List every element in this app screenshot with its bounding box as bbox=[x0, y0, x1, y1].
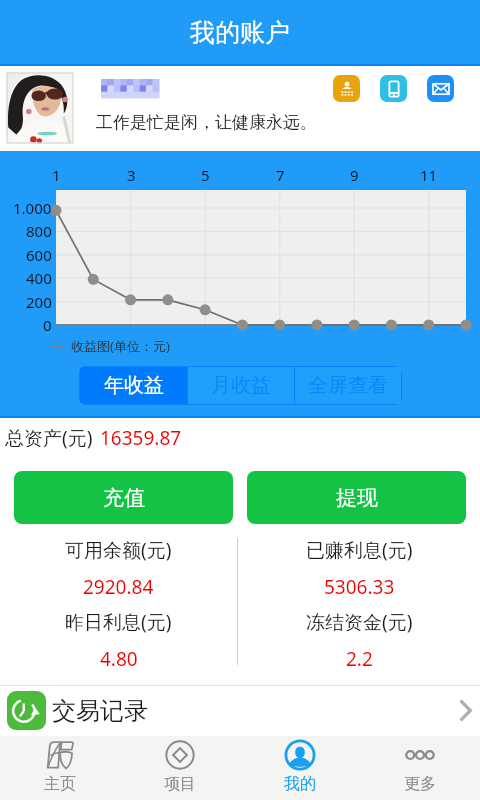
button[interactable]: 可用余额(元) bbox=[0, 537, 237, 600]
staticText: 1.000 bbox=[13, 198, 52, 218]
staticText: 主页 bbox=[44, 774, 76, 794]
staticText: 全屏查看 bbox=[308, 373, 388, 398]
staticText: 已赚利息(元) bbox=[306, 537, 413, 563]
staticText: 5 bbox=[201, 165, 210, 185]
button[interactable]: Mail bbox=[427, 75, 454, 102]
staticText: 0 bbox=[43, 315, 52, 335]
button[interactable]: 已赚利息(元) bbox=[238, 537, 480, 600]
staticText: 更多 bbox=[404, 774, 436, 794]
button[interactable]: 提现 bbox=[247, 471, 466, 524]
staticText: 提现 bbox=[336, 485, 378, 511]
staticText: 11 bbox=[420, 165, 438, 185]
staticText: 年收益 bbox=[104, 373, 164, 398]
staticText: 收益图(单位：元) bbox=[71, 337, 170, 355]
button[interactable]: 月收益 bbox=[188, 367, 294, 404]
button[interactable]: 全屏查看 bbox=[295, 367, 401, 404]
button[interactable]: 更多 bbox=[360, 736, 480, 800]
staticText: 我的账户 bbox=[190, 17, 290, 48]
button[interactable]: 交易记录 bbox=[0, 686, 480, 735]
staticText: 3 bbox=[127, 165, 136, 185]
staticText: 4.80 bbox=[100, 646, 138, 672]
staticText: 充值 bbox=[103, 485, 145, 511]
staticText: 项目 bbox=[164, 774, 196, 794]
staticText: 可用余额(元) bbox=[65, 537, 172, 563]
staticText: 800 bbox=[26, 221, 52, 241]
button[interactable]: 昨日利息(元) bbox=[0, 609, 237, 672]
button[interactable]: 我的 bbox=[240, 736, 360, 800]
button[interactable]: 年收益 bbox=[80, 367, 187, 404]
button[interactable]: 充值 bbox=[14, 471, 233, 524]
staticText: 月收益 bbox=[211, 373, 271, 398]
staticText: 16359.87 bbox=[100, 425, 182, 451]
staticText: 总资产(元) bbox=[5, 425, 93, 451]
staticText: 冻结资金(元) bbox=[306, 609, 413, 635]
staticText: 9 bbox=[350, 165, 359, 185]
staticText: 2920.84 bbox=[83, 574, 154, 600]
staticText: 200 bbox=[26, 292, 52, 312]
button[interactable]: 项目 bbox=[120, 736, 240, 800]
staticText: 我的 bbox=[284, 774, 316, 794]
staticText: 1 bbox=[52, 165, 61, 185]
staticText: 昨日利息(元) bbox=[65, 609, 172, 635]
button[interactable]: 冻结资金(元) bbox=[238, 609, 480, 672]
staticText: 5306.33 bbox=[324, 574, 395, 600]
staticText: 600 bbox=[26, 245, 52, 265]
staticText: 交易记录 bbox=[52, 696, 148, 726]
button[interactable]: 主页 bbox=[0, 736, 120, 800]
staticText: 2.2 bbox=[346, 646, 373, 672]
staticText: 400 bbox=[26, 268, 52, 288]
button[interactable]: Identity bbox=[333, 75, 360, 102]
button[interactable]: Phone bbox=[380, 75, 407, 102]
staticText: 工作是忙是闲，让健康永远。 bbox=[96, 112, 317, 133]
staticText: 7 bbox=[276, 165, 285, 185]
